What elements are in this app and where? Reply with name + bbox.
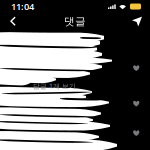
staticText: 댓글 [64, 15, 86, 28]
button[interactable]: Like [133, 100, 139, 107]
staticText: 11:04 [11, 0, 34, 13]
button[interactable]: 답글 1개 보기 [33, 81, 76, 90]
staticText: 답글 1개 보기 [33, 81, 76, 90]
button[interactable]: Share [127, 13, 147, 30]
button[interactable]: Like [133, 65, 139, 71]
button[interactable]: Back [3, 13, 23, 30]
button[interactable]: Like [133, 130, 139, 136]
